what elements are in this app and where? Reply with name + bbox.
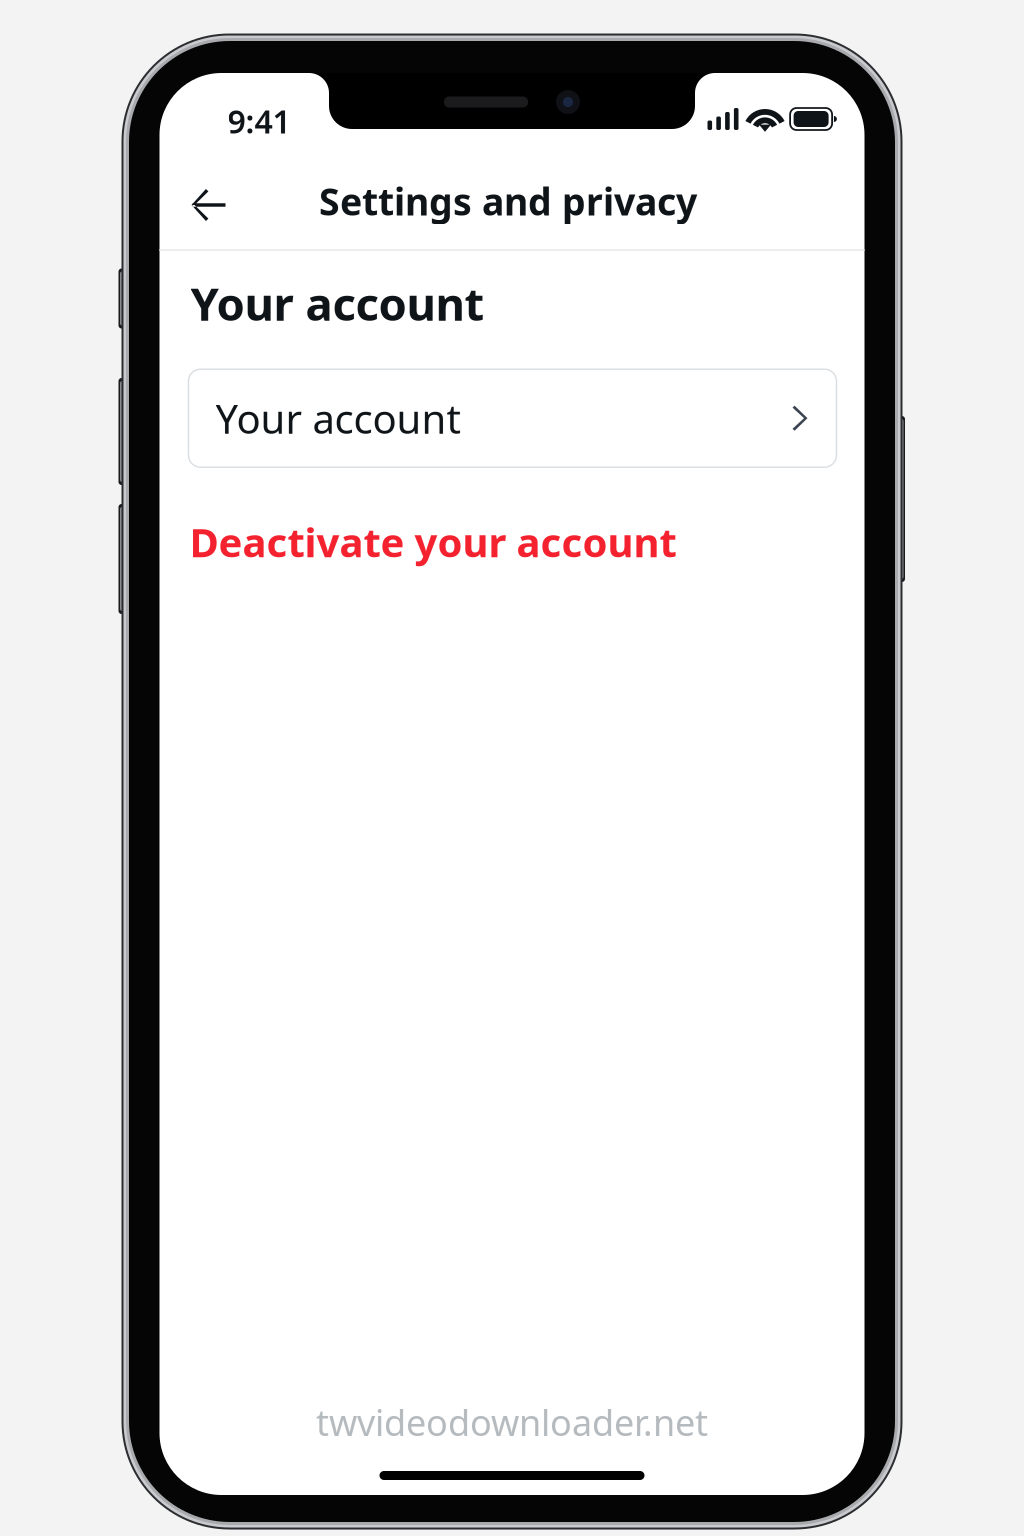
staticText: Settings and privacy bbox=[319, 176, 697, 226]
staticText: Your account bbox=[190, 273, 484, 333]
staticText: 9:41 bbox=[227, 100, 290, 142]
button[interactable]: Your account bbox=[188, 369, 836, 467]
button[interactable]: Back bbox=[176, 174, 238, 236]
button[interactable]: Deactivate your account bbox=[159, 467, 676, 576]
staticText: twvideodownloader.net bbox=[316, 1398, 708, 1446]
staticText: Your account bbox=[215, 392, 460, 445]
staticText: Deactivate your account bbox=[189, 515, 676, 568]
